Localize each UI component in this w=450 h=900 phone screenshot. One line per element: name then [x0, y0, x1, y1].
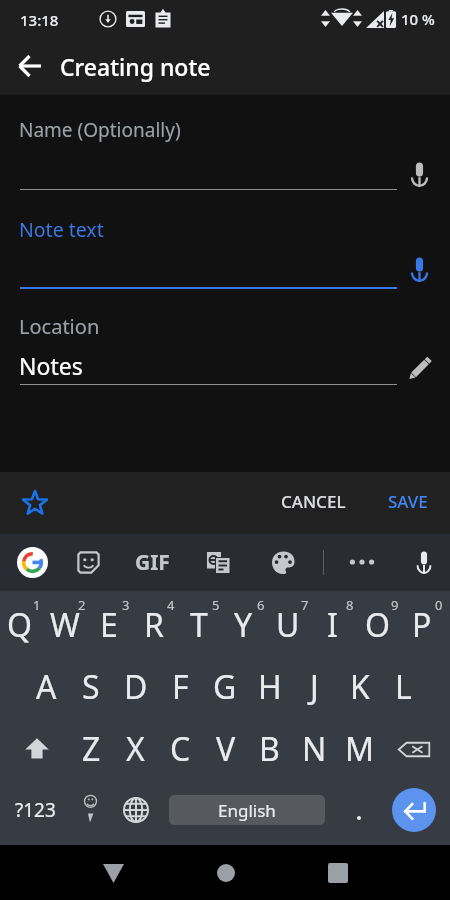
staticText: D	[124, 665, 148, 709]
staticText: 9	[391, 596, 399, 614]
button[interactable]: Enter	[392, 788, 436, 832]
staticText: Notes	[19, 350, 83, 381]
button[interactable]: N	[292, 718, 337, 780]
button[interactable]: GIF	[131, 541, 173, 583]
staticText: W	[50, 603, 80, 647]
staticText: Z	[82, 727, 101, 771]
staticText: K	[350, 665, 370, 709]
button[interactable]	[339, 779, 379, 841]
button[interactable]: Backspace	[386, 718, 442, 780]
staticText: 0	[435, 596, 443, 614]
button[interactable]: ?123	[6, 779, 64, 841]
button[interactable]: E	[89, 594, 134, 656]
staticText: GIF	[135, 548, 170, 577]
button[interactable]: Recents	[290, 851, 386, 895]
button[interactable]: U	[268, 594, 313, 656]
staticText: V	[216, 727, 236, 771]
button[interactable]: K	[337, 656, 382, 718]
button[interactable]: S	[68, 656, 113, 718]
staticText: X	[126, 727, 145, 771]
button[interactable]: C	[158, 718, 203, 780]
button[interactable]: D	[113, 656, 158, 718]
button[interactable]: O	[358, 594, 403, 656]
button[interactable]: English	[169, 795, 325, 825]
button[interactable]: Favorite	[13, 481, 57, 525]
staticText: B	[259, 727, 280, 771]
button[interactable]: Translate	[197, 541, 239, 583]
staticText: C	[170, 727, 191, 771]
staticText: Location	[19, 313, 100, 340]
staticText: J	[310, 665, 319, 709]
staticText: ?123	[15, 797, 56, 823]
staticText: 1	[33, 596, 41, 614]
staticText: H	[258, 665, 282, 709]
staticText: F	[172, 665, 189, 709]
button[interactable]: G	[202, 656, 247, 718]
staticText: 6	[257, 596, 265, 614]
button[interactable]: Themes	[262, 541, 304, 583]
staticText: S	[82, 665, 100, 709]
staticText: E	[100, 603, 118, 647]
staticText: I	[327, 603, 338, 647]
staticText: T	[190, 603, 208, 647]
staticText: Creating note	[60, 51, 211, 82]
button[interactable]: Z	[69, 718, 114, 780]
button[interactable]: Emoji	[67, 779, 113, 841]
button[interactable]: J	[292, 656, 337, 718]
staticText: A	[36, 665, 57, 709]
staticText: O	[365, 603, 390, 647]
staticText: 13:18	[20, 10, 59, 30]
button[interactable]: Edit location	[400, 347, 440, 387]
button[interactable]: More options	[341, 541, 383, 583]
staticText: Name (Optionally)	[19, 117, 181, 143]
button[interactable]: Voice input name	[399, 154, 439, 194]
staticText: Note text	[19, 216, 104, 243]
staticText: English	[218, 799, 276, 822]
button[interactable]: Stickers	[67, 541, 109, 583]
staticText: 10 %	[401, 9, 435, 29]
staticText: U	[276, 603, 300, 647]
staticText: Q	[7, 603, 32, 647]
button[interactable]: B	[247, 718, 292, 780]
button[interactable]: V	[203, 718, 248, 780]
button[interactable]: W	[45, 594, 90, 656]
button[interactable]: H	[247, 656, 292, 718]
staticText: M	[345, 727, 375, 771]
button[interactable]: Home	[178, 851, 274, 895]
staticText: 8	[346, 596, 354, 614]
staticText: G	[213, 665, 237, 709]
button[interactable]: Back	[65, 851, 161, 895]
button[interactable]: Voice input note	[399, 249, 439, 289]
button[interactable]: I	[313, 594, 358, 656]
staticText: N	[302, 727, 327, 771]
button[interactable]: M	[337, 718, 382, 780]
staticText: L	[395, 665, 412, 709]
staticText: 7	[301, 596, 309, 614]
staticText: CANCEL	[281, 490, 346, 513]
staticText: Y	[234, 603, 253, 647]
staticText: 3	[122, 596, 130, 614]
button[interactable]: Back	[6, 42, 54, 90]
staticText: R	[144, 603, 164, 647]
button[interactable]: T	[179, 594, 224, 656]
button[interactable]: L	[381, 656, 426, 718]
button[interactable]: A	[24, 656, 69, 718]
button[interactable]: Shift	[9, 718, 65, 780]
staticText: 5	[212, 596, 220, 614]
staticText: 4	[167, 596, 175, 614]
button[interactable]: F	[158, 656, 203, 718]
button[interactable]: CANCEL	[267, 481, 360, 522]
button[interactable]: SAVE	[374, 481, 442, 522]
button[interactable]: P	[402, 594, 447, 656]
button[interactable]: Q	[0, 594, 45, 656]
staticText: SAVE	[388, 490, 428, 513]
button[interactable]: X	[113, 718, 158, 780]
button[interactable]: Language	[113, 779, 159, 841]
button[interactable]: Voice input	[403, 541, 445, 583]
button[interactable]: Google	[11, 541, 53, 583]
button[interactable]: R	[134, 594, 179, 656]
staticText: 2	[78, 596, 86, 614]
staticText: P	[412, 603, 432, 647]
button[interactable]: Y	[224, 594, 269, 656]
